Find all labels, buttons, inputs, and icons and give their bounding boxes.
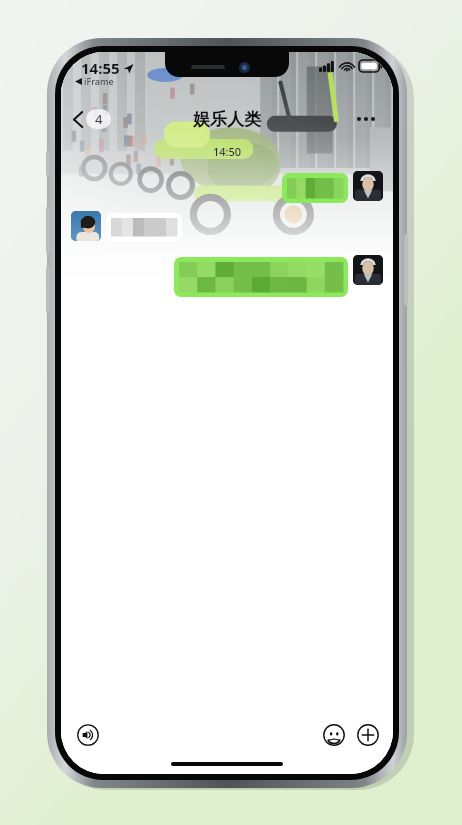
staticText: 14:55 (81, 58, 120, 78)
button[interactable]: Avatar (353, 255, 383, 285)
staticText: 14:50 (213, 144, 242, 159)
button[interactable]: More functions (353, 720, 383, 750)
staticText: iFrame (84, 75, 114, 87)
staticText: 娱乐人类 (193, 109, 261, 130)
button[interactable] (174, 257, 348, 297)
button[interactable] (282, 173, 348, 203)
button[interactable] (106, 213, 182, 241)
button[interactable]: Avatar (71, 211, 101, 241)
staticText: 4 (95, 110, 103, 128)
button[interactable]: Emoji (319, 720, 349, 750)
button[interactable]: Voice message (73, 720, 103, 750)
button[interactable]: More options (351, 111, 381, 127)
button[interactable]: Back (69, 105, 115, 133)
button[interactable]: Avatar (353, 171, 383, 201)
